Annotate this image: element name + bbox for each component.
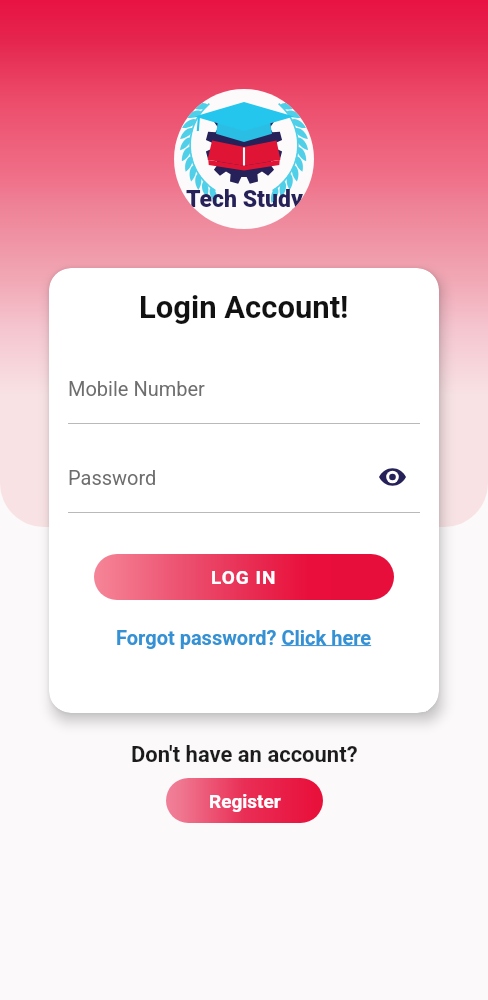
button[interactable]: LOG IN [94, 554, 394, 600]
button[interactable]: Show password [370, 455, 414, 499]
staticText: Forgot password? Click here [116, 626, 372, 649]
staticText: Login Account! [139, 289, 349, 325]
staticText: Tech Study [186, 186, 303, 213]
staticText: Register [209, 790, 281, 812]
staticText: Password [68, 466, 157, 489]
staticText: LOG IN [211, 566, 277, 588]
staticText: Mobile Number [68, 377, 205, 400]
button[interactable]: Forgot password? Click here [116, 626, 372, 649]
staticText: Don't have an account? [131, 742, 358, 768]
button[interactable]: Register [166, 778, 323, 823]
